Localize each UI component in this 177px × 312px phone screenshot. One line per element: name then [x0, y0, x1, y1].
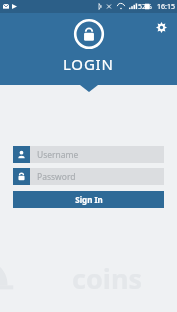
- staticText: coins: [72, 260, 142, 297]
- staticText: 16:15: [157, 2, 175, 12]
- staticText: 52%: [138, 2, 152, 12]
- staticText: Sign In: [75, 194, 103, 205]
- button[interactable]: Sign In: [13, 191, 164, 208]
- button[interactable]: Username: [13, 146, 164, 163]
- staticText: Username: [37, 149, 79, 161]
- button[interactable]: Password: [13, 168, 164, 185]
- staticText: LOGIN: [63, 54, 114, 74]
- button[interactable]: Settings: [152, 18, 170, 36]
- staticText: Password: [37, 171, 76, 183]
